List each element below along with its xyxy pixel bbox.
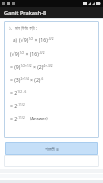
staticText: = 2-11/2 <box>10 102 25 109</box>
staticText: = (3)2×1/4 × (2)-6 <box>10 76 44 83</box>
staticText: (Answer) <box>30 116 48 122</box>
staticText: (√9)1/2 × (16)-3/2 <box>19 36 54 43</box>
button[interactable]: পরবর্তী ॥ <box>5 142 98 155</box>
staticText: = 2-11/2 <box>10 115 25 122</box>
staticText: মান নির্ণয় করি : <box>15 25 37 31</box>
staticText: পরবর্তী ॥ <box>45 146 59 152</box>
staticText: = 21/2 - 6 <box>10 89 27 96</box>
staticText: ১. <box>9 25 13 31</box>
staticText: = (9)1/2×1/2 × (2)4×-3/2 <box>10 63 53 70</box>
button[interactable]: ১. <box>4 21 99 138</box>
staticText: (√9)1/2 × (16)-3/2 <box>10 50 45 57</box>
button[interactable]: Ganit Prakash-8 <box>0 7 103 18</box>
staticText: a) <box>13 37 17 43</box>
staticText: Ganit Prakash-8 <box>4 9 47 17</box>
